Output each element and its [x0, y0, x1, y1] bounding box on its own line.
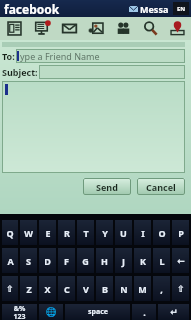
staticText: Messa	[140, 3, 169, 15]
staticText: ⇧	[177, 284, 185, 294]
button[interactable]: Language EN	[173, 2, 189, 15]
staticText: R	[64, 227, 70, 239]
button[interactable]: W	[20, 220, 37, 245]
button[interactable]: ⇧	[2, 276, 18, 301]
button[interactable]: P	[172, 220, 189, 245]
button[interactable]: Search	[137, 17, 164, 40]
staticText: B	[102, 283, 108, 295]
staticText: space	[88, 307, 108, 317]
staticText: ↵	[170, 307, 178, 317]
button[interactable]: R	[58, 220, 75, 245]
button[interactable]: L	[153, 248, 170, 273]
button[interactable]: Z	[20, 276, 37, 301]
staticText: G	[82, 255, 89, 267]
button[interactable]: ype a Friend Name	[16, 49, 185, 63]
staticText: EN	[177, 5, 186, 13]
staticText: Cancel	[146, 181, 176, 193]
staticText: X	[44, 283, 51, 295]
button[interactable]: Q	[2, 220, 18, 245]
button[interactable]: O	[153, 220, 170, 245]
button[interactable]: C	[58, 276, 75, 301]
button[interactable]: G	[77, 248, 94, 273]
button[interactable]: Places	[164, 17, 191, 40]
button[interactable]: K	[134, 248, 151, 273]
staticText: N	[120, 283, 128, 295]
button[interactable]: Send	[83, 178, 131, 195]
button[interactable]: Messages	[56, 17, 83, 40]
staticText: M	[138, 283, 147, 295]
staticText: U	[120, 227, 127, 239]
button[interactable]: B	[96, 276, 113, 301]
button[interactable]: M	[134, 276, 151, 301]
staticText: E	[45, 227, 51, 239]
staticText: Send	[96, 181, 118, 193]
staticText: O	[158, 227, 166, 239]
staticText: S	[26, 255, 31, 267]
button[interactable]: E	[39, 220, 56, 245]
staticText: F	[64, 255, 69, 267]
staticText: facebook	[4, 1, 60, 17]
staticText: W	[24, 227, 33, 239]
staticText: 🌐	[45, 307, 57, 318]
button[interactable]: .	[132, 304, 156, 320]
staticText: ←	[177, 256, 185, 266]
button[interactable]	[39, 65, 185, 79]
staticText: &% 123	[13, 304, 26, 320]
button[interactable]: ←	[172, 248, 189, 273]
staticText: ⇧	[6, 284, 14, 294]
staticText: J	[122, 255, 125, 267]
staticText: ,	[160, 283, 163, 295]
button[interactable]: space	[65, 304, 130, 320]
staticText: ype a Friend Name	[20, 50, 100, 62]
staticText: D	[44, 255, 51, 267]
button[interactable]: U	[115, 220, 132, 245]
staticText: H	[101, 255, 108, 267]
button[interactable]: X	[39, 276, 56, 301]
button[interactable]: ⇧	[172, 276, 189, 301]
button[interactable]: A	[2, 248, 18, 273]
staticText: To:	[2, 50, 15, 62]
staticText: C	[64, 283, 70, 295]
button[interactable]: ,	[153, 276, 170, 301]
staticText: K	[140, 255, 146, 267]
button[interactable]: F	[58, 248, 75, 273]
button[interactable]: D	[39, 248, 56, 273]
staticText: P	[178, 227, 184, 239]
staticText: Q	[6, 227, 14, 239]
button[interactable]: J	[115, 248, 132, 273]
staticText: .	[143, 306, 146, 318]
staticText: Y	[102, 227, 108, 239]
staticText: A	[7, 255, 14, 267]
staticText: T	[83, 227, 89, 239]
button[interactable]	[2, 81, 185, 173]
button[interactable]: Wall	[28, 17, 56, 40]
staticText: Subject:	[2, 66, 38, 78]
button[interactable]: S	[20, 248, 37, 273]
button[interactable]: Friends	[110, 17, 137, 40]
button[interactable]: &% 123	[2, 304, 37, 320]
staticText: L	[159, 255, 165, 267]
button[interactable]: News Feed	[0, 17, 28, 40]
button[interactable]: Cancel	[137, 178, 185, 195]
button[interactable]: 🌐	[39, 304, 63, 320]
button[interactable]: N	[115, 276, 132, 301]
staticText: V	[83, 283, 89, 295]
staticText: Z	[26, 283, 32, 295]
button[interactable]: Photos	[83, 17, 110, 40]
button[interactable]: I	[134, 220, 151, 245]
button[interactable]: ↵	[158, 304, 189, 320]
button[interactable]: H	[96, 248, 113, 273]
button[interactable]: Y	[96, 220, 113, 245]
button[interactable]: T	[77, 220, 94, 245]
staticText: I	[141, 227, 145, 239]
button[interactable]: V	[77, 276, 94, 301]
